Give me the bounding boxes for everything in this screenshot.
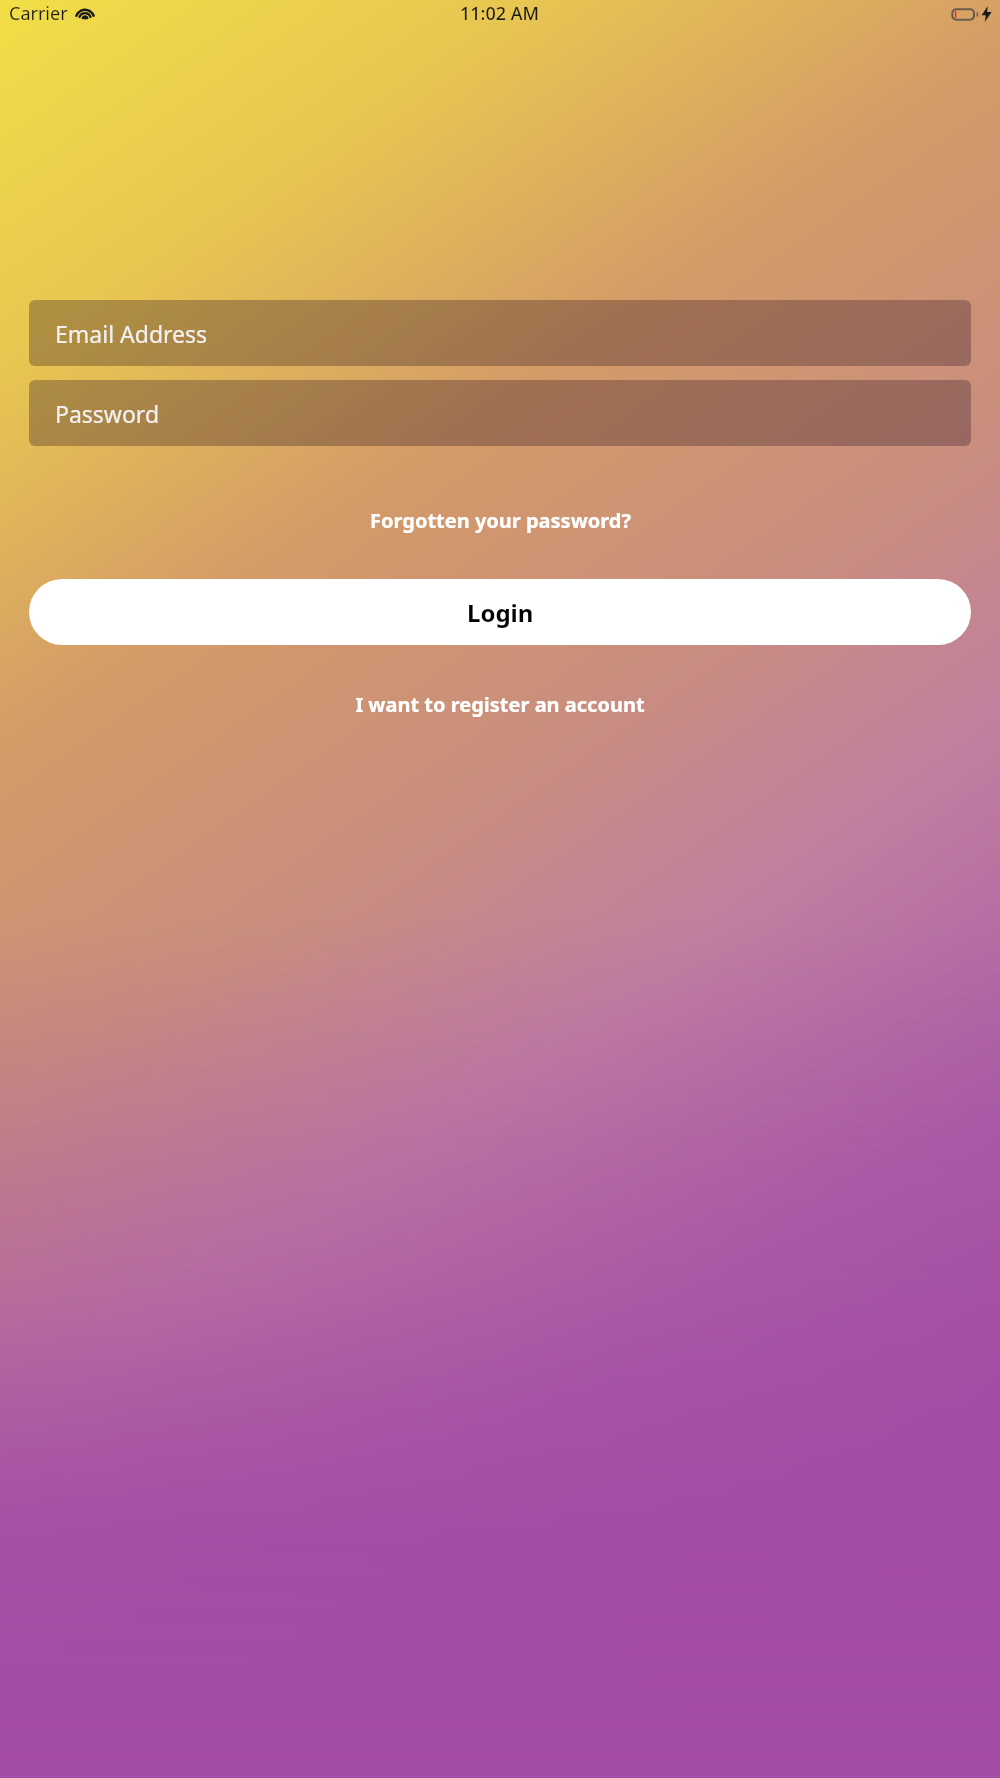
staticText: Password bbox=[55, 398, 160, 429]
staticText: I want to register an account bbox=[355, 691, 645, 718]
button[interactable]: Forgotten your password? bbox=[0, 501, 1000, 540]
button[interactable]: Email Address bbox=[29, 300, 971, 366]
staticText: Login bbox=[467, 596, 534, 629]
staticText: Carrier bbox=[9, 1, 68, 26]
button[interactable]: Password bbox=[29, 380, 971, 446]
staticText: Forgotten your password? bbox=[370, 507, 631, 534]
staticText: Email Address bbox=[55, 318, 208, 349]
button[interactable]: I want to register an account bbox=[0, 685, 1000, 724]
button[interactable]: Login bbox=[29, 579, 971, 645]
staticText: 11:02 AM bbox=[460, 1, 540, 26]
